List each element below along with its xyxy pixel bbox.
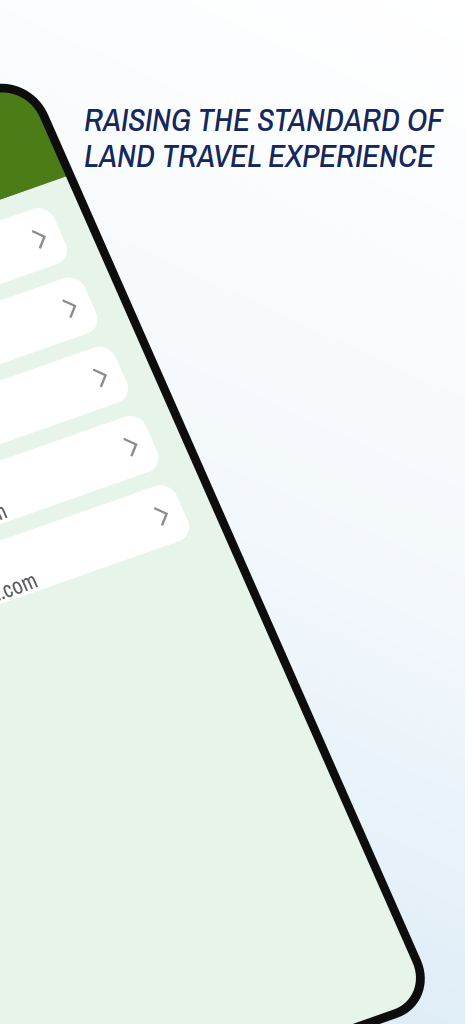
button[interactable]: Intercity Coach: [25, 283, 441, 343]
staticText: City Chauffeur: [45, 203, 186, 238]
staticText: Executive Van: [45, 355, 184, 389]
staticText: LAND TRAVEL EXPERIENCE: [84, 134, 434, 177]
button[interactable]: Group Shuttle: [25, 434, 441, 494]
button[interactable]: City Chauffeur: [25, 207, 441, 267]
staticText: Airport Transfer: [45, 128, 201, 162]
button[interactable]: Executive Van: [25, 359, 441, 419]
staticText: Intercity Coach: [45, 279, 193, 313]
staticText: bookings@landtravel.com: [45, 315, 270, 347]
staticText: bookings@landtravel.com: [45, 391, 270, 422]
staticText: bookings@landtravel.com: [45, 240, 270, 271]
staticText: RAISING THE STANDARD OF: [84, 98, 443, 141]
button[interactable]: Airport Transfer: [25, 132, 441, 192]
staticText: Group Shuttle: [45, 431, 180, 465]
staticText: bookings@landtravel.com: [45, 164, 270, 195]
staticText: bookings@landtravel.com: [45, 467, 270, 498]
